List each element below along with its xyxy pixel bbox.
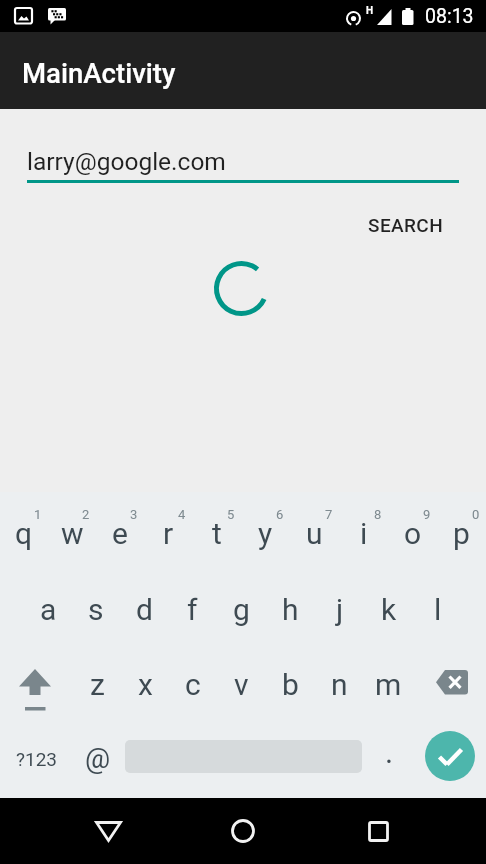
staticText: z [90,667,105,702]
staticText: 7 [325,507,333,522]
staticText: 5 [227,507,235,522]
staticText: v [234,667,249,702]
button[interactable]: n [315,644,364,722]
staticText: b [282,667,299,702]
button[interactable]: 5 [192,492,241,572]
button[interactable]: . [365,722,413,798]
staticText: a [40,592,57,627]
staticText: 4 [178,507,186,522]
button[interactable]: a [24,572,72,644]
staticText: y [258,516,273,551]
button[interactable]: j [315,572,364,644]
button[interactable]: z [73,644,121,722]
staticText: k [381,592,397,627]
staticText: 2 [82,507,90,522]
button[interactable] [21,131,465,187]
staticText: f [187,592,198,627]
staticText: . [385,734,394,770]
button[interactable] [122,722,365,798]
staticText: 3 [130,507,138,522]
button[interactable] [413,722,486,798]
staticText: 0 [472,507,480,522]
button[interactable]: f [168,572,217,644]
button[interactable]: c [169,644,217,722]
staticText: q [15,516,33,551]
button[interactable]: l [413,572,462,644]
staticText: 08:13 [425,5,474,28]
staticText: d [136,592,153,627]
button[interactable]: @ [73,722,122,798]
staticText: o [404,516,422,551]
staticText: r [163,516,174,551]
button[interactable]: 6 [241,492,290,572]
staticText: g [233,592,250,627]
button[interactable]: k [364,572,413,644]
staticText: 8 [374,507,382,522]
staticText: t [212,516,222,551]
staticText: i [360,516,368,551]
staticText: m [375,667,402,702]
button[interactable]: h [266,572,315,644]
button[interactable]: 7 [290,492,339,572]
button[interactable]: 8 [339,492,388,572]
staticText: w [61,516,84,551]
button[interactable]: d [120,572,168,644]
button[interactable] [72,808,144,854]
staticText: SEARCH [368,214,444,236]
button[interactable]: 3 [96,492,144,572]
button[interactable]: b [266,644,315,722]
button[interactable]: m [364,644,413,722]
button[interactable] [207,808,279,854]
staticText: c [185,667,201,702]
staticText: e [112,516,128,551]
staticText: j [336,592,344,627]
button[interactable]: s [72,572,120,644]
button[interactable]: 2 [48,492,96,572]
button[interactable] [0,644,73,722]
staticText: u [306,516,323,551]
staticText: 1 [34,507,42,522]
button[interactable]: v [217,644,266,722]
button[interactable] [413,644,486,722]
button[interactable]: g [217,572,266,644]
staticText: l [434,592,442,627]
button[interactable]: 4 [144,492,192,572]
button[interactable]: 9 [388,492,437,572]
staticText: H [366,5,374,17]
button[interactable]: 0 [437,492,486,572]
staticText: 9 [423,507,431,522]
staticText: 6 [276,507,284,522]
button[interactable]: ?123 [0,722,73,798]
staticText: n [331,667,348,702]
staticText: s [88,592,104,627]
staticText: @ [85,742,111,775]
staticText: MainActivity [22,57,176,89]
staticText: x [138,667,153,702]
button[interactable]: SEARCH [350,197,462,253]
button[interactable]: x [121,644,169,722]
staticText: p [453,516,470,551]
button[interactable]: 1 [0,492,48,572]
staticText: ?123 [16,748,58,770]
staticText: h [282,592,299,627]
button[interactable] [342,808,414,854]
staticText: larry@google.com [27,147,226,176]
